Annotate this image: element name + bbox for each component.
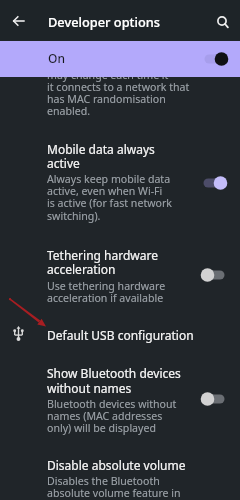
staticText: Tethering hardware [47, 247, 158, 263]
staticText: active, even when Wi-Fi [47, 184, 163, 198]
button[interactable]: Toggle on [199, 173, 229, 193]
staticText: On [48, 50, 65, 66]
staticText: Disables the Bluetooth [47, 474, 160, 488]
staticText: without names [47, 380, 132, 396]
staticText: acceleration [47, 261, 116, 277]
button[interactable] [0, 456, 240, 500]
button[interactable] [0, 41, 240, 77]
staticText: is active (for fast network [47, 196, 172, 210]
button[interactable] [0, 244, 240, 308]
staticText: Show Bluetooth devices [47, 365, 181, 381]
button[interactable] [0, 322, 240, 354]
staticText: enabled. [47, 104, 91, 118]
button[interactable]: Toggle off [199, 389, 229, 409]
button[interactable]: Back [7, 9, 31, 33]
staticText: it connects to a network that [47, 80, 190, 94]
staticText: only) will be displayed [47, 421, 156, 435]
staticText: Default USB configuration [47, 327, 194, 343]
staticText: Disable absolute volume [47, 457, 186, 473]
staticText: Bluetooth devices without [47, 397, 177, 411]
button[interactable]: Toggle off [199, 265, 229, 285]
staticText: Always keep mobile data [47, 172, 171, 186]
staticText: names (MAC addresses [47, 409, 163, 423]
button[interactable] [0, 136, 240, 224]
button[interactable] [0, 362, 240, 438]
button[interactable]: Toggle on [200, 49, 230, 69]
staticText: active [47, 155, 80, 171]
staticText: absolute volume feature in [47, 486, 181, 500]
staticText: may change each time it [47, 68, 169, 82]
staticText: switching). [47, 209, 101, 223]
button[interactable]: Search [210, 9, 234, 33]
staticText: Use tethering hardware [47, 279, 166, 293]
staticText: Mobile data always [47, 141, 155, 157]
staticText: has MAC randomisation [47, 92, 166, 106]
staticText: acceleration if available [47, 291, 164, 305]
staticText: Developer options [48, 13, 160, 30]
